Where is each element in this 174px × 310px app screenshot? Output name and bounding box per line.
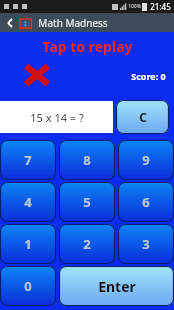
- staticText: 9: [142, 151, 150, 169]
- staticText: 21:45: [150, 1, 171, 12]
- button[interactable]: C: [116, 100, 169, 134]
- staticText: Score: 0: [131, 70, 166, 82]
- staticText: 5: [83, 193, 91, 211]
- staticText: 4: [24, 193, 32, 211]
- staticText: C: [139, 109, 147, 125]
- staticText: 15 x 14 = ?: [30, 110, 84, 125]
- button[interactable]: 9: [118, 140, 174, 180]
- button[interactable]: 7: [0, 140, 56, 180]
- button[interactable]: 8: [59, 140, 115, 180]
- button[interactable]: 4: [0, 182, 56, 222]
- button[interactable]: Back: [4, 17, 16, 29]
- staticText: 7: [24, 151, 32, 169]
- button[interactable]: 15 x 14 = ?: [0, 101, 113, 133]
- staticText: Math Madness: [38, 16, 108, 30]
- staticText: 0: [24, 277, 32, 295]
- button[interactable]: 0: [0, 266, 56, 306]
- button[interactable]: 6: [118, 182, 174, 222]
- staticText: Enter: [98, 277, 136, 296]
- staticText: 3: [142, 235, 150, 253]
- button[interactable]: 1: [0, 224, 56, 264]
- staticText: 8: [83, 151, 91, 169]
- button[interactable]: 5: [59, 182, 115, 222]
- button[interactable]: 3: [118, 224, 174, 264]
- staticText: Tap to replay: [42, 37, 133, 56]
- button[interactable]: 2: [59, 224, 115, 264]
- staticText: 6: [142, 193, 150, 211]
- staticText: 100%: [128, 3, 141, 10]
- staticText: 1: [24, 235, 32, 253]
- button[interactable]: Enter: [59, 266, 174, 306]
- staticText: 2: [83, 235, 91, 253]
